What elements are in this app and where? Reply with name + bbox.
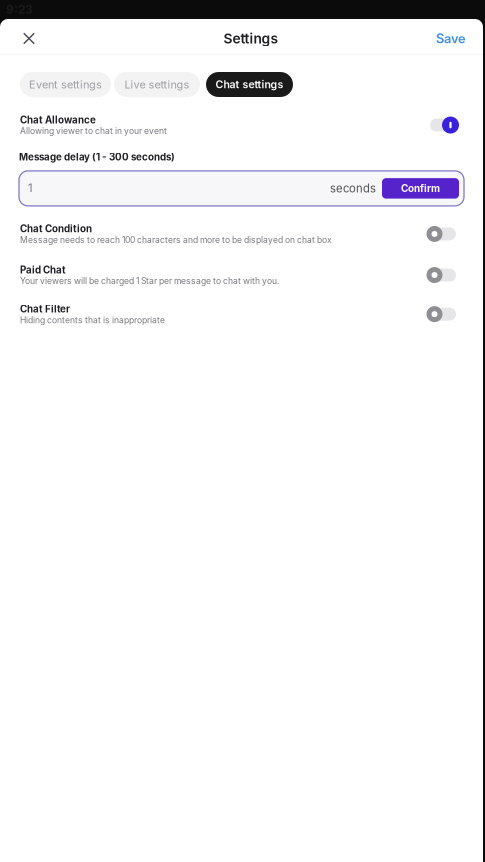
button[interactable]: Close (12, 22, 46, 55)
staticText: Message delay (1 - 300 seconds) (19, 151, 175, 163)
staticText: Live settings (124, 78, 189, 91)
staticText: seconds (330, 182, 376, 195)
button[interactable]: Paid Chat (426, 266, 459, 283)
staticText: 9:23 (6, 2, 33, 17)
staticText: Confirm (401, 182, 440, 194)
button[interactable]: Save (426, 22, 466, 55)
staticText: Hiding contents that is inappropriate (20, 315, 165, 325)
button[interactable]: Live settings (114, 72, 200, 97)
staticText: Your viewers will be charged 1 Star per … (20, 276, 279, 286)
staticText: Settings (223, 30, 278, 47)
staticText: Event settings (29, 78, 102, 91)
staticText: Paid Chat (20, 264, 66, 276)
staticText: Save (436, 31, 466, 46)
button[interactable]: Chat Condition (426, 225, 459, 242)
staticText: Chat Allowance (20, 114, 96, 126)
staticText: Allowing viewer to chat in your event (20, 126, 167, 136)
staticText: Chat settings (215, 78, 283, 91)
button[interactable]: Chat settings (206, 72, 293, 97)
staticText: Chat Condition (20, 223, 92, 235)
button[interactable]: Event settings (20, 72, 111, 97)
button[interactable]: Confirm (382, 178, 459, 199)
button[interactable]: Chat Allowance (426, 117, 459, 134)
button[interactable]: Chat Filter (426, 306, 459, 323)
staticText: Message needs to reach 100 characters an… (20, 235, 332, 245)
staticText: Chat Filter (20, 303, 70, 315)
staticText: 1 (28, 182, 33, 195)
